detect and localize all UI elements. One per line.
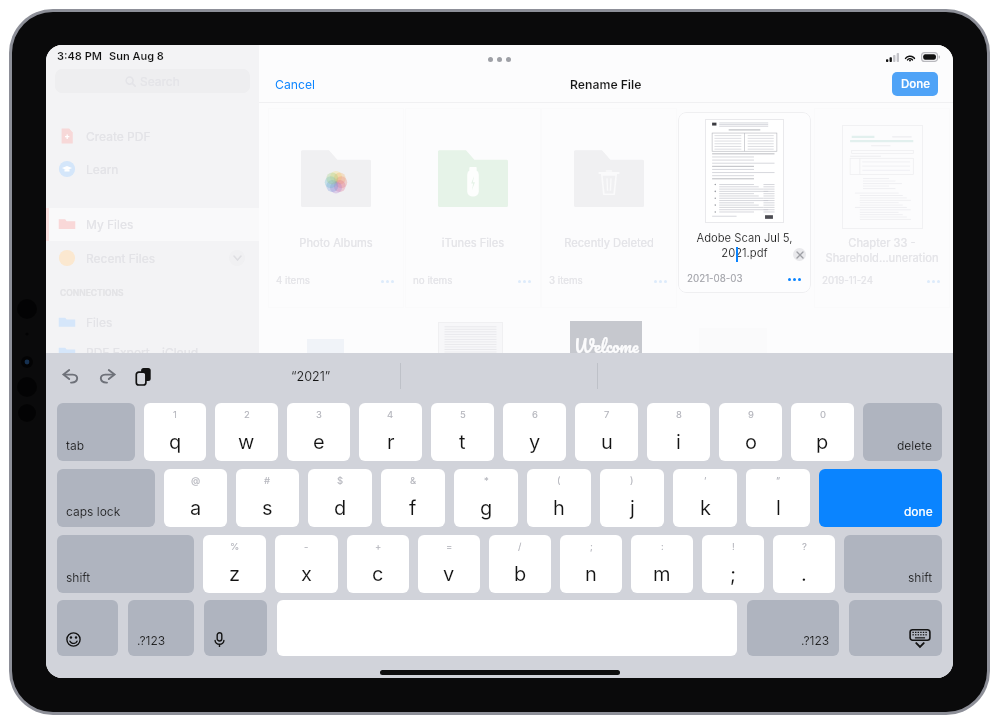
staticText: Recent Files xyxy=(86,251,156,266)
staticText: s xyxy=(262,496,273,520)
staticText: w xyxy=(238,430,255,454)
button[interactable]: 8 xyxy=(647,403,710,461)
button[interactable]: 4 xyxy=(359,403,422,461)
button[interactable]: ? xyxy=(773,535,835,593)
staticText: a xyxy=(190,496,202,520)
button[interactable]: Paste xyxy=(131,364,155,388)
staticText: z xyxy=(229,562,241,586)
staticText: / xyxy=(518,541,522,552)
button[interactable]: More options xyxy=(650,276,671,287)
button[interactable]: # xyxy=(236,469,299,527)
button[interactable]: 1 xyxy=(144,403,206,461)
button[interactable]: 2 xyxy=(215,403,278,461)
button[interactable]: : xyxy=(631,535,693,593)
staticText: i xyxy=(676,430,681,454)
button[interactable]: More options xyxy=(377,276,398,287)
staticText: CONNECTIONS xyxy=(60,288,124,298)
button[interactable]: Recently Deleted xyxy=(541,108,677,308)
button[interactable]: caps lock xyxy=(57,469,155,527)
staticText: m xyxy=(653,562,671,586)
button[interactable]: My Files xyxy=(46,211,259,237)
button[interactable]: Create PDF xyxy=(46,123,259,149)
button[interactable]: shift xyxy=(844,535,942,593)
staticText: 4 xyxy=(387,409,394,420)
staticText: 1 xyxy=(173,409,177,420)
button[interactable]: shift xyxy=(57,535,194,593)
button[interactable]: iTunes Files xyxy=(405,108,541,308)
button[interactable]: & xyxy=(381,469,445,527)
staticText: 8 xyxy=(676,409,682,420)
staticText: ; xyxy=(730,562,737,586)
button[interactable]: Chapter 33 - Sharehold...uneration xyxy=(814,108,950,308)
button[interactable]: ’ xyxy=(673,469,737,527)
button[interactable]: = xyxy=(418,535,480,593)
button[interactable]: Recent Files xyxy=(46,245,259,271)
button[interactable]: ! xyxy=(702,535,764,593)
staticText: & xyxy=(410,475,417,486)
button[interactable]: - xyxy=(275,535,338,593)
button[interactable]: + xyxy=(347,535,409,593)
staticText: tab xyxy=(66,438,85,453)
button[interactable]: 0 xyxy=(791,403,854,461)
button[interactable]: done xyxy=(819,469,942,527)
button[interactable]: Files xyxy=(46,309,259,335)
button[interactable]: Photo Albums xyxy=(268,108,404,308)
button[interactable]: Hide keyboard xyxy=(849,600,942,656)
button[interactable]: * xyxy=(454,469,518,527)
button[interactable]: $ xyxy=(308,469,372,527)
staticText: : xyxy=(661,541,664,552)
button[interactable]: Done xyxy=(892,72,938,96)
button[interactable]: Dictation xyxy=(204,600,267,656)
button[interactable]: Redo xyxy=(95,364,119,388)
button[interactable]: Adobe Scan Jul 5, 2021.pdf xyxy=(678,112,811,293)
button[interactable]: tab xyxy=(57,403,135,461)
button[interactable]: ) xyxy=(600,469,664,527)
staticText: d xyxy=(334,496,347,520)
button[interactable]: Learn xyxy=(46,156,259,182)
button[interactable]: Expand Recent Files xyxy=(229,250,245,266)
button[interactable]: ( xyxy=(527,469,591,527)
staticText: t xyxy=(459,430,466,454)
button[interactable]: 6 xyxy=(503,403,566,461)
staticText: h xyxy=(553,496,565,520)
staticText: Learn xyxy=(86,162,119,177)
staticText: $ xyxy=(337,475,344,486)
staticText: Welcome xyxy=(574,332,639,353)
button[interactable]: @ xyxy=(164,469,227,527)
staticText: .?123 xyxy=(137,633,166,648)
staticText: 3:48 PM xyxy=(57,49,102,62)
button[interactable]: Multitasking controls xyxy=(484,53,515,66)
button[interactable]: ” xyxy=(746,469,810,527)
staticText: 6 xyxy=(532,409,538,420)
button[interactable]: 5 xyxy=(431,403,494,461)
button[interactable]: delete xyxy=(863,403,942,461)
staticText: l xyxy=(776,496,781,520)
button[interactable]: Undo xyxy=(59,364,83,388)
button[interactable]: % xyxy=(203,535,266,593)
button[interactable]: / xyxy=(489,535,551,593)
staticText: shift xyxy=(908,570,933,585)
button[interactable]: 9 xyxy=(719,403,782,461)
button[interactable]: Cancel xyxy=(259,70,327,99)
button[interactable]: More options xyxy=(514,276,535,287)
button[interactable]: Clear text xyxy=(793,248,806,261)
staticText: b xyxy=(514,562,527,586)
button[interactable]: ; xyxy=(560,535,622,593)
button[interactable]: 3 xyxy=(287,403,350,461)
staticText: Done xyxy=(901,77,930,91)
button[interactable]: More options xyxy=(785,275,804,284)
staticText: v xyxy=(443,562,455,586)
button[interactable]: .?123 xyxy=(128,600,194,656)
staticText: no items xyxy=(413,275,453,287)
button[interactable]: .?123 xyxy=(747,600,839,656)
button[interactable]: Emoji xyxy=(57,600,118,656)
staticText: 4 items xyxy=(276,275,311,287)
button[interactable]: More options xyxy=(923,276,944,287)
staticText: n xyxy=(585,562,597,586)
staticText: e xyxy=(313,430,325,454)
staticText: j xyxy=(630,496,635,520)
button[interactable]: PDF Export - iCloud xyxy=(46,339,259,365)
button[interactable]: 7 xyxy=(575,403,638,461)
